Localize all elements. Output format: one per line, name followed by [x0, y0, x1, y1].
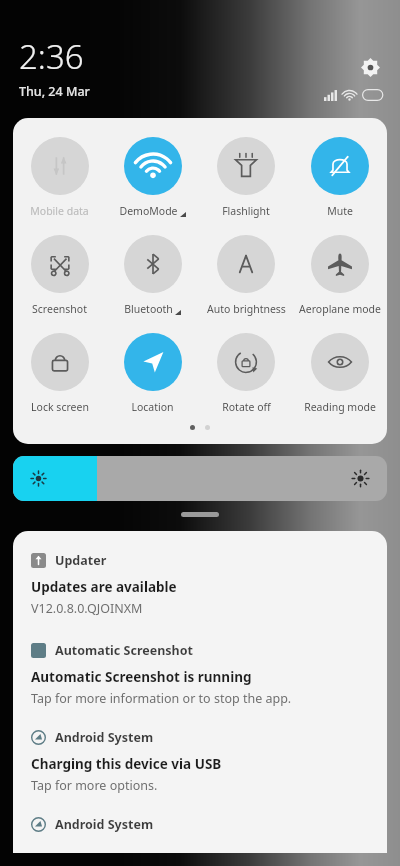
- button[interactable]: Screenshot: [13, 233, 106, 318]
- button[interactable]: Mute: [293, 135, 387, 220]
- button[interactable]: Location: [106, 331, 199, 416]
- button[interactable]: Flashlight: [199, 135, 293, 220]
- staticText: Location: [131, 400, 174, 414]
- staticText: Automatic Screenshot is running: [31, 668, 252, 686]
- button[interactable]: Android System: [31, 729, 371, 794]
- button[interactable]: Lock screen: [13, 331, 106, 416]
- button[interactable]: Mobile data: [13, 135, 106, 220]
- staticText: Flashlight: [222, 204, 270, 218]
- staticText: 2:36: [19, 34, 84, 79]
- button[interactable]: Aeroplane mode: [293, 233, 387, 318]
- staticText: Screenshot: [32, 302, 87, 316]
- button[interactable]: DemoMode: [106, 135, 199, 220]
- staticText: Android System: [55, 729, 154, 746]
- staticText: Updater: [55, 552, 107, 569]
- button[interactable]: Reading mode: [293, 331, 387, 416]
- staticText: Updates are available: [31, 578, 177, 596]
- button[interactable]: Brightness: [13, 456, 387, 501]
- staticText: Aeroplane mode: [299, 302, 381, 316]
- staticText: V12.0.8.0.QJOINXM: [31, 600, 143, 617]
- staticText: DemoMode: [119, 204, 178, 218]
- staticText: Automatic Screenshot: [55, 642, 193, 659]
- button[interactable]: Automatic Screenshot: [31, 642, 371, 707]
- staticText: Charging this device via USB: [31, 755, 222, 773]
- button[interactable]: Android System: [31, 816, 371, 833]
- button[interactable]: Auto brightness: [199, 233, 293, 318]
- staticText: Android System: [55, 816, 154, 833]
- staticText: Tap for more options.: [31, 777, 158, 794]
- staticText: Tap for more information or to stop the …: [31, 690, 292, 707]
- staticText: Rotate off: [222, 400, 271, 414]
- staticText: Mobile data: [30, 204, 89, 218]
- staticText: Mute: [327, 204, 353, 218]
- staticText: Auto brightness: [207, 302, 286, 316]
- staticText: Lock screen: [31, 400, 89, 414]
- button[interactable]: Rotate off: [199, 331, 293, 416]
- button[interactable]: Settings: [356, 53, 384, 81]
- button[interactable]: Bluetooth: [106, 233, 199, 318]
- staticText: Reading mode: [304, 400, 376, 414]
- staticText: Bluetooth: [124, 302, 173, 316]
- staticText: Thu, 24 Mar: [19, 83, 90, 100]
- button[interactable]: Updater: [31, 552, 371, 617]
